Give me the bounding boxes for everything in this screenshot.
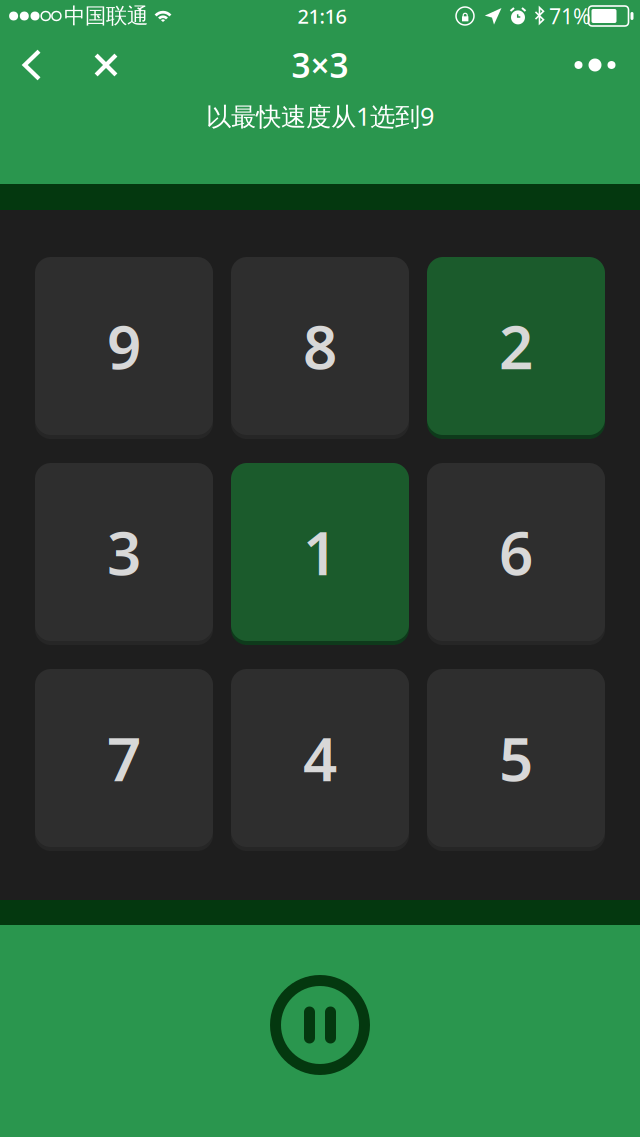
button[interactable]: Back [4, 37, 60, 93]
button[interactable]: 8 [231, 255, 409, 437]
button[interactable]: 2 [427, 255, 605, 437]
staticText: 6 [499, 512, 533, 592]
staticText: 9 [107, 306, 141, 386]
staticText: 2 [499, 306, 533, 386]
staticText: 3 [107, 512, 141, 592]
staticText: 21:16 [297, 3, 346, 29]
staticText: 4 [303, 718, 337, 798]
staticText: 中国联通 [64, 3, 148, 29]
button[interactable]: 3 [35, 461, 213, 643]
button[interactable]: 6 [427, 461, 605, 643]
button[interactable]: 1 [231, 461, 409, 643]
button[interactable]: Close [78, 37, 134, 93]
button[interactable]: 7 [35, 667, 213, 849]
staticText: 7 [107, 718, 141, 798]
button[interactable]: 4 [231, 667, 409, 849]
staticText: 1 [303, 512, 337, 592]
button[interactable]: Pause [264, 969, 376, 1081]
staticText: 以最快速度从1选到9 [206, 99, 434, 133]
staticText: 3×3 [291, 43, 348, 87]
staticText: 5 [499, 718, 533, 798]
button[interactable]: 9 [35, 255, 213, 437]
button[interactable]: More options [565, 37, 625, 93]
staticText: 71% [549, 2, 591, 30]
staticText: 8 [303, 306, 337, 386]
button[interactable]: 5 [427, 667, 605, 849]
